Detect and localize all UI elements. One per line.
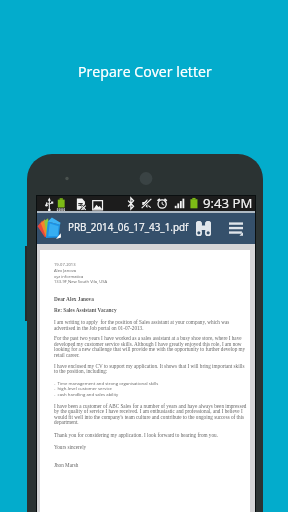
staticText: - high-level customer service (54, 385, 112, 391)
staticText: I have enclosed my CV to support my appl… (54, 363, 245, 369)
staticText: would fit well into the company's team c… (54, 414, 245, 420)
staticText: 9:43 PM (203, 194, 253, 209)
staticText: - cash handling and sales ability (54, 391, 119, 397)
staticText: retail career. (54, 352, 80, 358)
staticText: to the position, including: (54, 368, 108, 374)
staticText: developed my customer service skills. Al… (54, 341, 242, 347)
staticText: looking for a new challenge that will pr… (54, 346, 246, 352)
button[interactable]: Search (192, 215, 218, 241)
staticText: Jhon Marsh (54, 462, 79, 468)
staticText: Dear Alex Janova (54, 296, 94, 302)
staticText: Alex Janova (54, 268, 77, 274)
staticText: 133-9F,New South Vila, USA (54, 279, 108, 285)
staticText: advertised in the Job portal on 01-07-20… (54, 325, 144, 331)
staticText: I am writing to apply for the position o… (54, 319, 230, 325)
staticText: department. (54, 419, 79, 425)
staticText: - Time management and strong organisatio… (54, 380, 159, 386)
staticText: I have been a customer of ABC Sales for … (54, 403, 247, 409)
staticText: Yours sincerely (54, 444, 87, 450)
button[interactable]: Menu (224, 216, 248, 240)
staticText: PRB_2014_06_17_43_1.pdf (68, 220, 189, 233)
staticText: For the past two years I have worked as … (54, 335, 242, 341)
staticText: 19-07-2013 (54, 262, 76, 268)
staticText: xyz informatica (54, 274, 84, 280)
staticText: Thank you for considering my application… (54, 432, 218, 438)
staticText: by the quality of service I have receive… (54, 408, 243, 414)
button[interactable]: App icon (36, 215, 62, 241)
staticText: Prepare Cover letter (78, 62, 212, 81)
staticText: Re: Sales Assistant Vacancy (54, 307, 117, 313)
